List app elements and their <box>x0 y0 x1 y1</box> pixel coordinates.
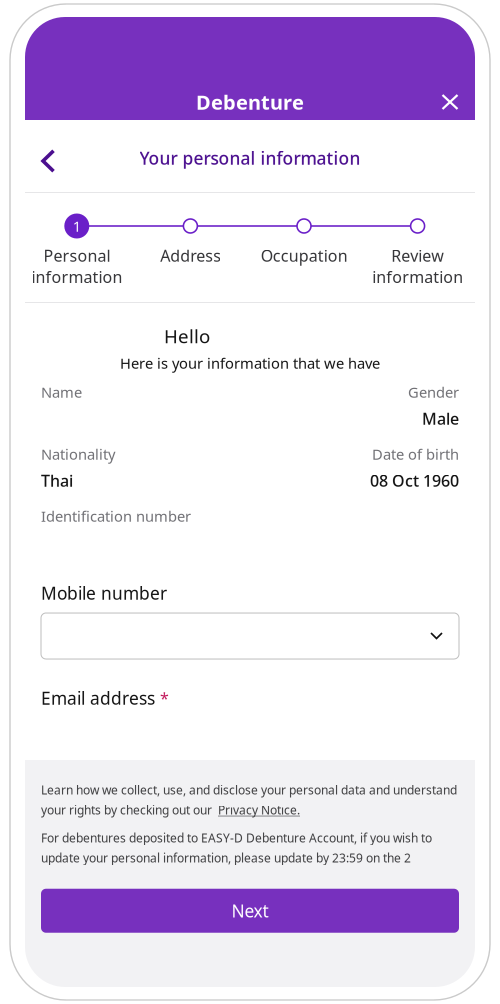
button[interactable] <box>41 613 459 659</box>
staticText: Hello <box>164 324 210 348</box>
staticText: Review information <box>372 245 463 287</box>
staticText: Mobile number <box>41 581 167 604</box>
staticText: Here is your information that we have <box>120 353 380 373</box>
staticText: 08 Oct 1960 <box>370 470 459 491</box>
staticText: Date of birth <box>372 444 459 464</box>
staticText: Occupation <box>260 245 347 266</box>
staticText: Gender <box>408 382 459 402</box>
staticText: * <box>160 687 169 709</box>
staticText: Learn how we collect, use, and disclose … <box>41 782 457 818</box>
staticText: Your personal information <box>139 146 360 169</box>
staticText: Debenture <box>196 89 304 115</box>
button[interactable]: Next <box>41 889 459 933</box>
staticText: Nationality <box>41 444 115 464</box>
staticText: 1 <box>73 216 81 236</box>
staticText: Thai <box>41 470 73 491</box>
staticText: Personal information <box>31 245 122 287</box>
staticText: Email address <box>41 686 155 709</box>
button[interactable]: Back <box>26 139 70 183</box>
staticText: Address <box>160 245 221 266</box>
staticText: For debentures deposited to EASY-D Deben… <box>41 830 432 866</box>
staticText: Identification number <box>41 506 191 526</box>
staticText: Male <box>422 408 459 429</box>
staticText: Name <box>41 382 82 402</box>
staticText: Next <box>231 899 268 922</box>
button[interactable]: Close <box>430 84 470 120</box>
